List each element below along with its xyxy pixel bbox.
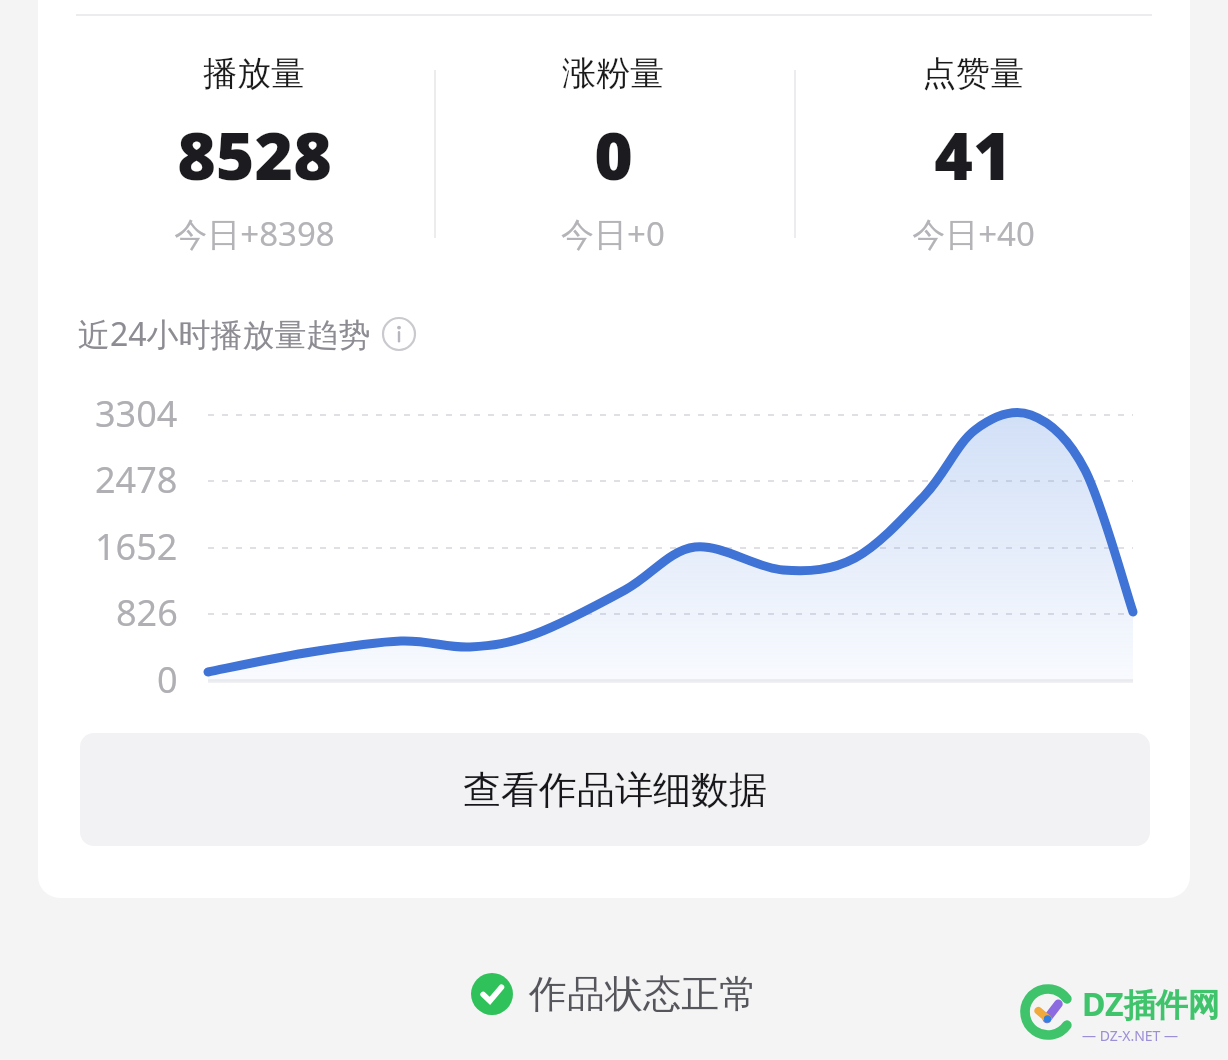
button[interactable]: 点赞量 — [803, 52, 1143, 256]
staticText: 今日+0 — [561, 211, 665, 256]
staticText: 涨粉量 — [562, 52, 664, 95]
staticText: 作品状态正常 — [529, 970, 757, 1018]
staticText: 826 — [116, 588, 178, 637]
button[interactable]: 说明 — [381, 316, 417, 352]
staticText: 播放量 — [203, 52, 305, 95]
staticText: 近24小时播放量趋势 — [78, 312, 371, 356]
staticText: 点赞量 — [922, 52, 1024, 95]
button[interactable]: 查看作品详细数据 — [80, 733, 1150, 846]
staticText: DZ插件网 — [1082, 982, 1220, 1026]
button[interactable]: 播放量 — [84, 52, 424, 256]
staticText: 1652 — [95, 522, 178, 571]
staticText: 2478 — [95, 455, 178, 504]
staticText: 今日+40 — [912, 211, 1035, 256]
staticText: 查看作品详细数据 — [463, 766, 767, 814]
staticText: 8528 — [177, 109, 332, 199]
staticText: 41 — [934, 109, 1012, 199]
staticText: 3304 — [95, 389, 178, 438]
staticText: 0 — [594, 109, 633, 199]
staticText: 0 — [157, 655, 178, 704]
staticText: 今日+8398 — [174, 211, 335, 256]
staticText: — DZ-X.NET — — [1082, 1026, 1179, 1042]
button[interactable]: 涨粉量 — [443, 52, 783, 256]
